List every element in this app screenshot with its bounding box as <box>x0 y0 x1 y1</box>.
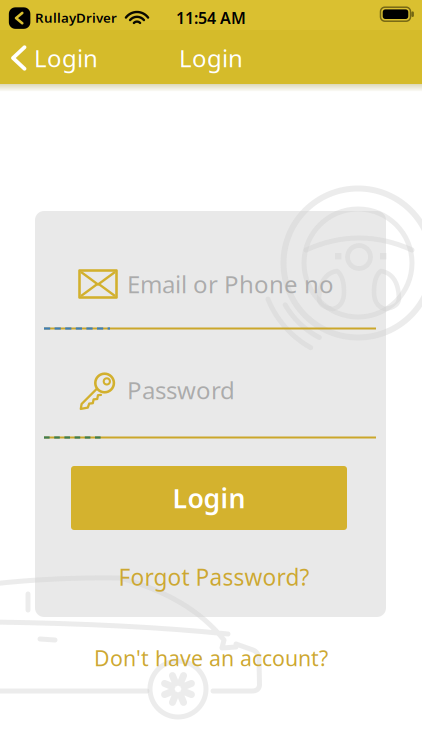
staticText: Login <box>172 480 245 516</box>
button[interactable]: Don't have an account? <box>94 644 328 672</box>
button[interactable]: Back to RullayDriver <box>9 7 30 29</box>
staticText: RullayDriver <box>35 9 117 26</box>
staticText: Login <box>34 42 98 74</box>
button[interactable]: Login <box>71 466 347 530</box>
button[interactable]: Password <box>44 369 376 439</box>
staticText: Don't have an account? <box>94 644 328 672</box>
staticText: Login <box>179 42 243 74</box>
button[interactable]: Back <box>10 36 120 80</box>
staticText: 11:54 AM <box>176 7 246 28</box>
button[interactable]: Forgot Password? <box>118 562 309 592</box>
staticText: Forgot Password? <box>118 562 309 592</box>
staticText: Password <box>127 374 235 406</box>
button[interactable]: Email or Phone no <box>44 262 376 332</box>
staticText: Email or Phone no <box>127 268 334 300</box>
